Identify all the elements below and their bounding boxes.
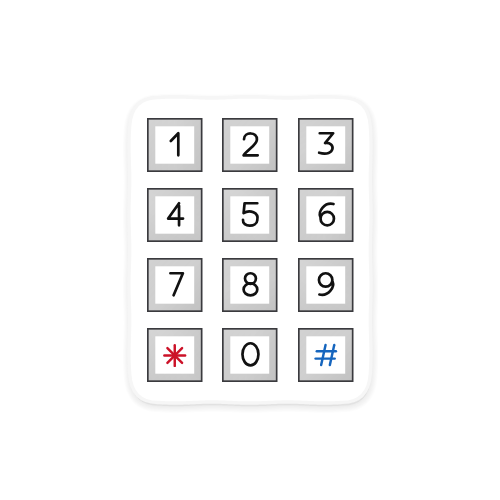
button[interactable]: Key 5	[222, 188, 278, 242]
button[interactable]: Key 0	[222, 328, 278, 382]
button[interactable]: Key 6	[298, 188, 354, 242]
button[interactable]: Pound key	[298, 328, 354, 382]
button[interactable]: Key 8	[222, 258, 278, 312]
button[interactable]: Key 7	[147, 258, 203, 312]
button[interactable]: Key 4	[147, 188, 203, 242]
button[interactable]: Key 9	[298, 258, 354, 312]
button[interactable]: Key 3	[298, 118, 354, 172]
button[interactable]: Key 1	[147, 118, 203, 172]
button[interactable]: Star key	[147, 328, 203, 382]
button[interactable]: Key 2	[222, 118, 278, 172]
